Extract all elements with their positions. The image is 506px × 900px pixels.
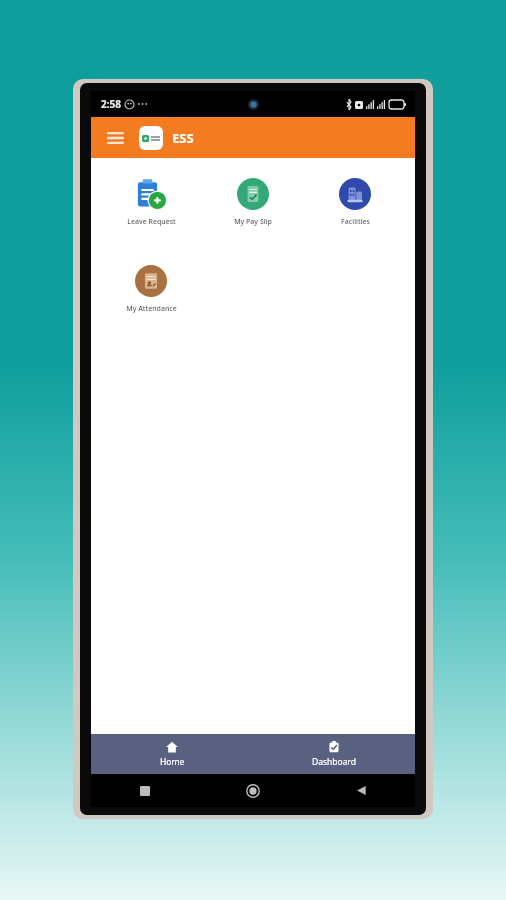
button[interactable]: Dashboard <box>253 736 415 773</box>
button[interactable]: Home <box>199 784 307 798</box>
staticText: My Pay Slip <box>234 217 272 227</box>
staticText: Leave Request <box>127 217 176 227</box>
button[interactable]: Back <box>307 785 415 796</box>
button[interactable]: Open navigation menu <box>104 127 126 149</box>
staticText: ESS <box>172 129 194 147</box>
button[interactable]: Leave Request <box>113 167 189 244</box>
button[interactable]: My Attendance <box>113 254 189 331</box>
staticText: 2:58 <box>101 97 121 111</box>
button[interactable]: Recent apps <box>91 786 199 796</box>
staticText: Home <box>160 756 185 768</box>
staticText: Facilities <box>341 217 370 227</box>
button[interactable]: Facilities <box>317 167 393 244</box>
staticText: My Attendance <box>126 304 177 314</box>
staticText: Dashboard <box>312 756 357 768</box>
button[interactable]: My Pay Slip <box>215 167 291 244</box>
button[interactable]: Home <box>91 736 253 773</box>
